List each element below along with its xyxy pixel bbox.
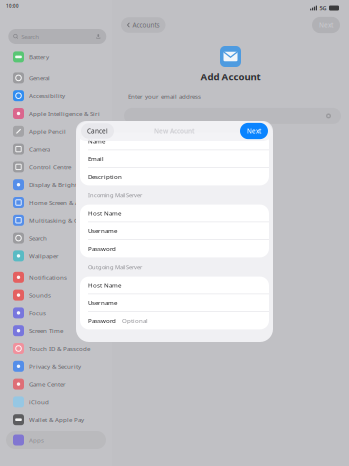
button[interactable]: Screen Time — [0, 322, 112, 340]
staticText: Control Centre — [29, 163, 71, 171]
button[interactable]: Cancel — [81, 123, 114, 139]
staticText: Password — [88, 244, 116, 253]
staticText: Search — [21, 32, 39, 41]
staticText: Username — [88, 298, 117, 307]
button[interactable]: Clear text — [325, 112, 332, 119]
button[interactable]: Battery — [0, 48, 112, 66]
button[interactable]: Multitasking & Gestures — [0, 211, 112, 229]
button[interactable]: Control Centre — [0, 158, 112, 176]
button[interactable]: Privacy & Security — [0, 357, 112, 375]
staticText: Username — [88, 226, 117, 235]
staticText: Privacy & Security — [29, 362, 81, 370]
button[interactable]: Camera — [0, 140, 112, 158]
button[interactable]: Display & Brightness — [0, 176, 112, 194]
staticText: Outgoing Mail Server — [88, 263, 142, 271]
staticText: 5G — [319, 4, 326, 12]
staticText: Host Name — [88, 209, 121, 217]
staticText: Multitasking & Gestures — [29, 216, 98, 224]
button[interactable]: Apps — [6, 431, 106, 449]
button[interactable]: Accounts — [121, 17, 165, 33]
staticText: Accounts — [132, 21, 159, 29]
button[interactable]: Search — [0, 229, 112, 247]
button[interactable]: Apple Pencil — [0, 122, 112, 140]
staticText: New Account — [154, 127, 195, 135]
button[interactable]: Next — [312, 17, 340, 33]
button[interactable]: General — [0, 69, 112, 87]
staticText: Screen Time — [29, 326, 63, 335]
button[interactable]: Home Screen & App Library — [0, 194, 112, 211]
staticText: Apple Intelligence & Siri — [29, 109, 100, 118]
staticText: Wallpaper — [29, 252, 59, 260]
staticText: Search — [29, 234, 47, 242]
staticText: Display & Brightness — [29, 180, 90, 189]
staticText: Focus — [29, 309, 46, 317]
staticText: Touch ID & Passcode — [29, 344, 90, 353]
staticText: Accessibility — [29, 91, 65, 100]
staticText: Notifications — [29, 273, 67, 281]
staticText: Cancel — [87, 127, 108, 135]
button[interactable]: Search — [8, 29, 106, 44]
button[interactable]: Notifications — [0, 268, 112, 286]
staticText: Email — [88, 154, 104, 163]
staticText: Camera — [29, 145, 50, 153]
staticText: Battery — [29, 53, 49, 61]
staticText: Add Account — [200, 70, 260, 83]
button[interactable]: Wallpaper — [0, 247, 112, 265]
staticText: Apps — [29, 436, 44, 444]
staticText: General — [29, 74, 50, 82]
staticText: Enter your email address — [128, 92, 201, 100]
staticText: Sounds — [29, 291, 51, 299]
staticText: Game Center — [29, 380, 66, 388]
staticText: Password — [88, 316, 116, 325]
button[interactable]: Accessibility — [0, 87, 112, 105]
button[interactable]: Wallet & Apple Pay — [0, 411, 112, 429]
staticText: Name — [88, 137, 105, 145]
staticText: Home Screen & App Library — [29, 198, 105, 207]
button[interactable]: iCloud — [0, 393, 112, 411]
staticText: Next — [319, 21, 333, 29]
staticText: Host Name — [88, 281, 121, 289]
button[interactable]: Apple Intelligence & Siri — [0, 105, 112, 122]
staticText: iCloud — [29, 398, 49, 406]
staticText: Apple Pencil — [29, 127, 66, 135]
staticText: Next — [247, 127, 261, 135]
staticText: Wallet & Apple Pay — [29, 415, 84, 424]
staticText: Incoming Mail Server — [88, 191, 142, 199]
staticText: 10:00 — [6, 3, 19, 9]
staticText: Optional — [122, 316, 148, 325]
button[interactable]: Touch ID & Passcode — [0, 340, 112, 357]
button[interactable]: Game Center — [0, 375, 112, 393]
button[interactable]: Sounds — [0, 286, 112, 304]
button[interactable]: Next — [240, 123, 268, 139]
staticText: Description — [88, 172, 122, 181]
button[interactable]: Focus — [0, 304, 112, 322]
